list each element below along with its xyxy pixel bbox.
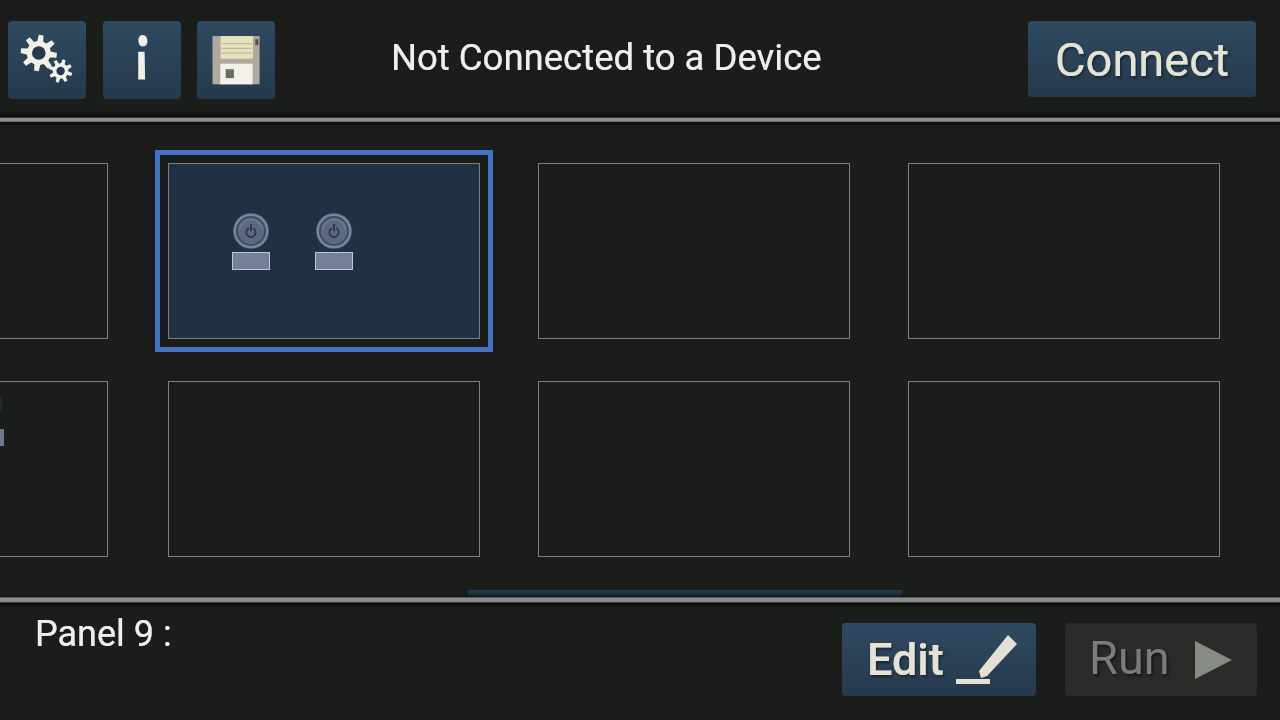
staticText: Not Connected to a Device bbox=[391, 36, 822, 79]
staticText: Run bbox=[1089, 630, 1170, 685]
button[interactable]: Save bbox=[197, 21, 275, 99]
staticText: Connect bbox=[1055, 32, 1230, 87]
button[interactable] bbox=[0, 381, 108, 557]
button[interactable]: Power toggle bbox=[155, 150, 493, 352]
button[interactable]: Edit bbox=[842, 623, 1036, 696]
button[interactable]: Power toggle bbox=[315, 212, 353, 270]
button[interactable]: Run bbox=[1065, 623, 1257, 696]
button[interactable] bbox=[538, 163, 850, 339]
button[interactable]: Info bbox=[103, 21, 181, 99]
staticText: Panel 9 : bbox=[35, 613, 172, 655]
button[interactable]: Power toggle bbox=[232, 212, 270, 270]
button[interactable] bbox=[908, 381, 1220, 557]
button[interactable] bbox=[0, 163, 108, 339]
button[interactable]: Settings bbox=[8, 21, 86, 99]
button[interactable] bbox=[908, 163, 1220, 339]
button[interactable] bbox=[168, 381, 480, 557]
button[interactable]: Connect bbox=[1028, 21, 1256, 97]
staticText: Edit bbox=[867, 633, 944, 686]
button[interactable] bbox=[538, 381, 850, 557]
